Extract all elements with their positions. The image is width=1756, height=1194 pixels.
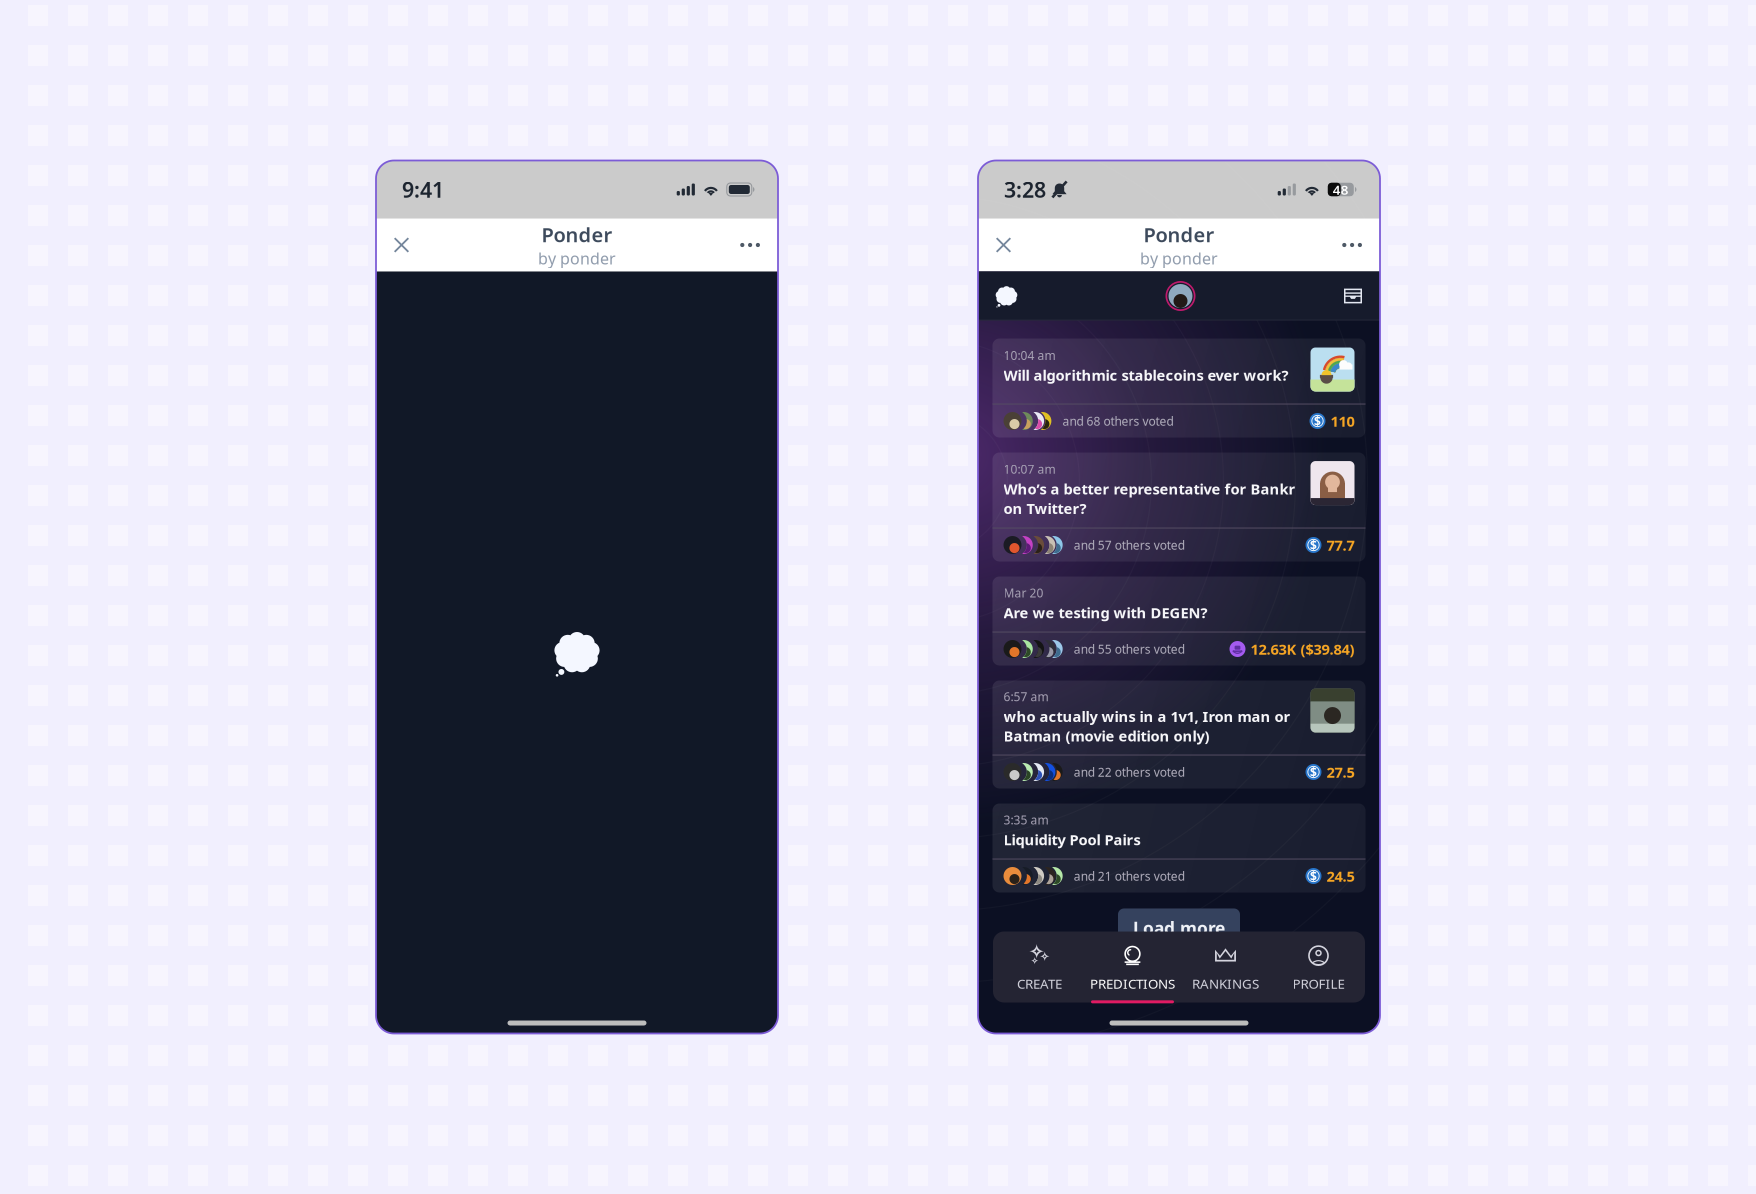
staticText: and 57 others voted [1074, 537, 1185, 553]
staticText: and 55 others voted [1074, 641, 1185, 657]
staticText: Are we testing with DEGEN? [1003, 603, 1207, 622]
button[interactable]: Profile [1160, 276, 1200, 316]
staticText: and 21 others voted [1074, 868, 1185, 884]
staticText: $ [1314, 413, 1321, 429]
button[interactable]: Mar 20 [992, 576, 1365, 665]
staticText: 27.5 [1326, 762, 1354, 782]
staticText: Ponder [541, 221, 612, 248]
staticText: $ [1310, 868, 1317, 884]
staticText: and 22 others voted [1074, 764, 1185, 780]
staticText: PREDICTIONS [1090, 975, 1175, 992]
staticText: Load more [1133, 916, 1225, 939]
staticText: 10:07 am [1003, 461, 1055, 477]
button[interactable]: CREATE [993, 931, 1086, 1002]
button[interactable]: 3:35 am [992, 803, 1365, 892]
staticText: who actually wins in a 1v1, Iron man or … [1003, 706, 1290, 745]
staticText: 77.7 [1326, 535, 1354, 555]
staticText: RANKINGS [1192, 975, 1259, 992]
staticText: by ponder [538, 248, 616, 269]
staticText: 3:28 [1004, 175, 1046, 204]
button[interactable]: 6:57 am [992, 680, 1365, 788]
staticText: and 68 others voted [1062, 413, 1173, 429]
button[interactable]: RANKINGS [1179, 931, 1272, 1002]
staticText: CREATE [1017, 975, 1062, 992]
button[interactable]: Close [978, 219, 1025, 270]
button[interactable]: More options [726, 221, 778, 269]
staticText: 3:35 am [1003, 812, 1048, 828]
button[interactable]: Close [376, 219, 423, 270]
staticText: 24.5 [1326, 866, 1354, 886]
staticText: 6:57 am [1003, 689, 1048, 704]
staticText: 110 [1330, 411, 1354, 431]
staticText: Will algorithmic stablecoins ever work? [1003, 365, 1288, 385]
staticText: Who’s a better representative for Bankr … [1003, 479, 1295, 518]
staticText: 48 [1333, 181, 1349, 198]
staticText: $ [1310, 537, 1317, 553]
staticText: Ponder [1143, 221, 1214, 248]
button[interactable]: 10:04 am [992, 338, 1365, 437]
staticText: Mar 20 [1003, 585, 1043, 601]
button[interactable]: 10:07 am [992, 452, 1365, 561]
staticText: $ [1310, 764, 1317, 780]
button[interactable]: PROFILE [1272, 931, 1365, 1002]
staticText: Liquidity Pool Pairs [1003, 830, 1140, 849]
button[interactable]: Load more [1118, 908, 1240, 947]
button[interactable]: Inbox [1331, 273, 1380, 319]
staticText: 12.63K ($39.84) [1250, 639, 1354, 659]
button[interactable]: Thoughts [978, 272, 1030, 319]
staticText: PROFILE [1292, 975, 1344, 992]
staticText: by ponder [1140, 248, 1218, 269]
button[interactable]: More options [1328, 221, 1380, 269]
staticText: 9:41 [402, 175, 444, 204]
button[interactable]: PREDICTIONS [1086, 931, 1179, 1002]
staticText: 10:04 am [1003, 347, 1055, 363]
